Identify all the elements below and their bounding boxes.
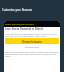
staticText: Select the bonuses you want: [5, 23, 35, 26]
staticText: Choose up to three bonus offers that sui…: [5, 32, 59, 38]
staticText: Customize your Bonuses: [2, 8, 33, 12]
button[interactable]: Choose bonuses: [5, 38, 59, 44]
staticText: Terms and conditions apply. Offers are a…: [5, 50, 59, 58]
staticText: Maybe later: [5, 45, 59, 48]
button[interactable]: Customize your Bonuses: [0, 0, 64, 21]
button[interactable]: Select the bonuses you want: [4, 21, 60, 27]
staticText: Choose bonuses: [22, 40, 42, 43]
staticText: Less Stress Rewards in March: [5, 27, 44, 31]
